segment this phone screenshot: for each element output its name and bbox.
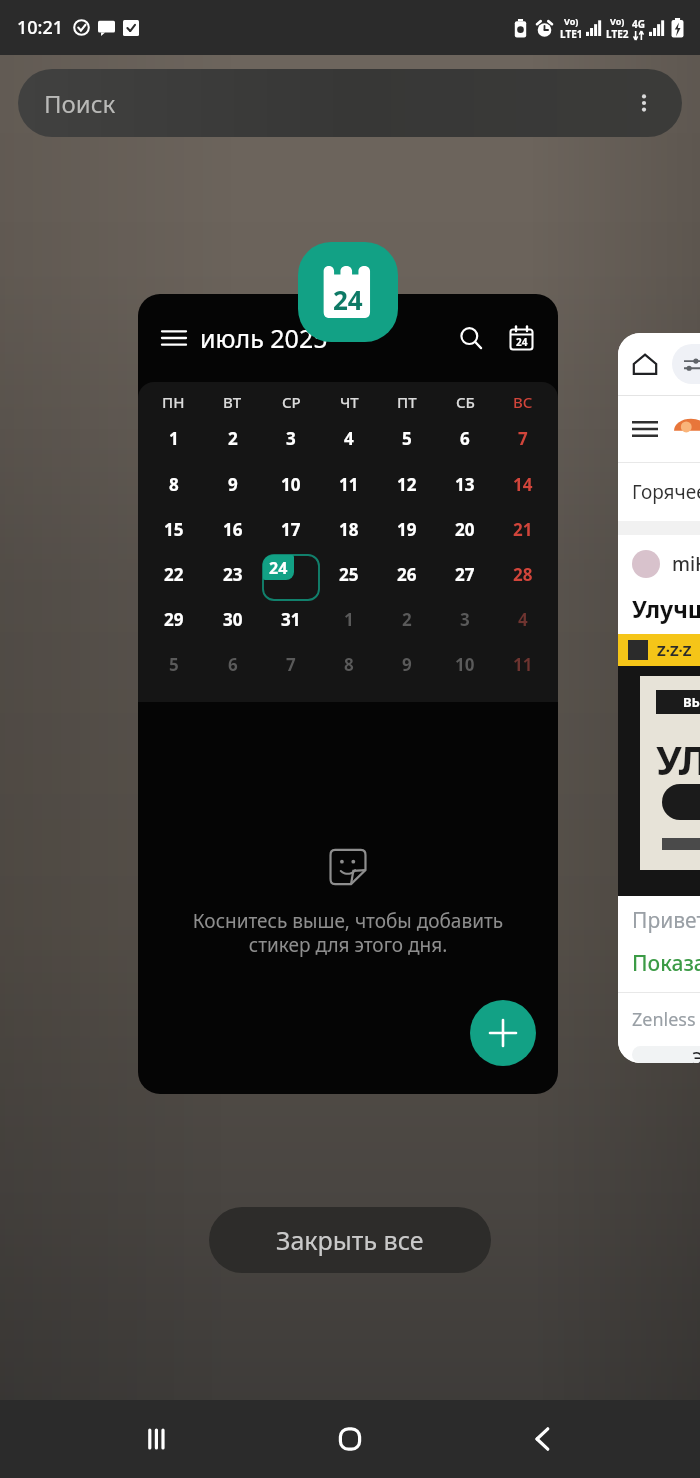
button[interactable]: Go to today — [500, 317, 542, 359]
button[interactable]: 2 — [378, 602, 436, 647]
staticText: Поиск — [44, 87, 116, 120]
staticText: 3 — [460, 608, 470, 631]
staticText: СР — [282, 392, 301, 412]
button[interactable]: 27 — [436, 557, 494, 602]
button[interactable]: Recent apps — [121, 1403, 193, 1475]
button[interactable]: Menu — [138, 294, 558, 1094]
button[interactable]: 10 — [436, 647, 494, 692]
button[interactable]: 11 — [494, 647, 552, 692]
button[interactable]: 3 — [262, 421, 320, 467]
staticText: 31 — [281, 608, 301, 631]
button[interactable]: Back — [507, 1403, 579, 1475]
staticText: miHoYo — [672, 551, 700, 577]
staticText: 15 — [164, 518, 184, 541]
button[interactable]: 14 — [494, 467, 552, 512]
button[interactable]: 30 — [203, 602, 262, 647]
staticText: 9 — [228, 473, 238, 496]
button[interactable]: 15 — [144, 512, 203, 557]
staticText: Zenless Zone — [632, 1007, 700, 1032]
button[interactable]: 4 — [320, 421, 378, 467]
staticText: ВТ — [223, 392, 242, 412]
staticText: 19 — [397, 518, 417, 541]
staticText: 17 — [281, 518, 301, 541]
staticText: 18 — [339, 518, 359, 541]
button[interactable]: 26 — [378, 557, 436, 602]
staticText: 5 — [402, 427, 412, 450]
staticText: 4G — [632, 17, 645, 31]
button[interactable]: 20 — [436, 512, 494, 557]
staticText: 25 — [339, 563, 359, 586]
staticText: Закрыть все — [276, 1223, 424, 1257]
staticText: 8 — [169, 473, 179, 496]
staticText: Коснитесь выше, чтобы добавить стикер дл… — [166, 908, 530, 957]
button[interactable]: 10 — [262, 467, 320, 512]
staticText: 4 — [344, 427, 354, 450]
staticText: 23 — [223, 563, 243, 586]
button[interactable]: 9 — [203, 467, 262, 512]
button[interactable]: 13 — [436, 467, 494, 512]
button[interactable]: More options — [620, 79, 668, 127]
button[interactable]: Эмоци — [632, 1046, 700, 1063]
staticText: 3 — [286, 427, 296, 450]
button[interactable]: 21 — [494, 512, 552, 557]
staticText: 24 — [333, 282, 363, 317]
button[interactable]: 5 — [144, 647, 203, 692]
button[interactable]: p — [672, 344, 700, 384]
button[interactable]: 2 — [203, 421, 262, 467]
button[interactable]: 28 — [494, 557, 552, 602]
button[interactable]: 5 — [378, 421, 436, 467]
button[interactable]: Menu — [154, 318, 194, 358]
button[interactable]: 1 — [144, 421, 203, 467]
staticText: 27 — [455, 563, 475, 586]
button[interactable]: 12 — [378, 467, 436, 512]
button[interactable]: 11 — [320, 467, 378, 512]
button[interactable]: 7 — [494, 421, 552, 467]
button[interactable]: 31 — [262, 602, 320, 647]
button[interactable]: 3 — [436, 602, 494, 647]
button[interactable]: 24 — [262, 557, 320, 602]
button[interactable]: Calendar app — [298, 242, 398, 342]
button[interactable]: 29 — [144, 602, 203, 647]
staticText: 24 — [516, 335, 528, 349]
staticText: 6 — [228, 653, 238, 676]
button[interactable]: Закрыть все — [209, 1207, 491, 1273]
staticText: 8 — [344, 653, 354, 676]
button[interactable]: 19 — [378, 512, 436, 557]
staticText: 10 — [455, 653, 475, 676]
button[interactable]: 6 — [203, 647, 262, 692]
staticText: 21 — [513, 518, 533, 541]
button[interactable]: 25 — [320, 557, 378, 602]
button[interactable]: Поиск — [18, 69, 682, 137]
button[interactable]: 23 — [203, 557, 262, 602]
staticText: 7 — [286, 653, 296, 676]
button[interactable]: Home — [314, 1403, 386, 1475]
staticText: ВС — [513, 392, 533, 412]
button[interactable]: 8 — [144, 467, 203, 512]
staticText: Горячее — [632, 479, 700, 505]
staticText: 4 — [518, 608, 528, 631]
button[interactable]: 18 — [320, 512, 378, 557]
staticText: 12 — [397, 473, 417, 496]
staticText: 1 — [344, 608, 354, 631]
button[interactable]: Add event — [470, 1000, 536, 1066]
button[interactable]: 16 — [203, 512, 262, 557]
button[interactable]: 8 — [320, 647, 378, 692]
button[interactable]: 22 — [144, 557, 203, 602]
button[interactable]: 9 — [378, 647, 436, 692]
staticText: 26 — [397, 563, 417, 586]
staticText: 11 — [339, 473, 359, 496]
staticText: 13 — [455, 473, 475, 496]
staticText: 7 — [518, 427, 528, 450]
staticText: Z·Z·Z — [657, 640, 692, 660]
staticText: июль 2025 — [200, 321, 328, 355]
staticText: 2 — [402, 608, 412, 631]
button[interactable]: 6 — [436, 421, 494, 467]
button[interactable]: 1 — [320, 602, 378, 647]
staticText: 20 — [455, 518, 475, 541]
button[interactable]: 4 — [494, 602, 552, 647]
button[interactable]: 7 — [262, 647, 320, 692]
button[interactable]: 17 — [262, 512, 320, 557]
button[interactable]: Search — [450, 317, 492, 359]
staticText: ЧТ — [340, 392, 359, 412]
button[interactable]: p — [618, 333, 700, 1063]
